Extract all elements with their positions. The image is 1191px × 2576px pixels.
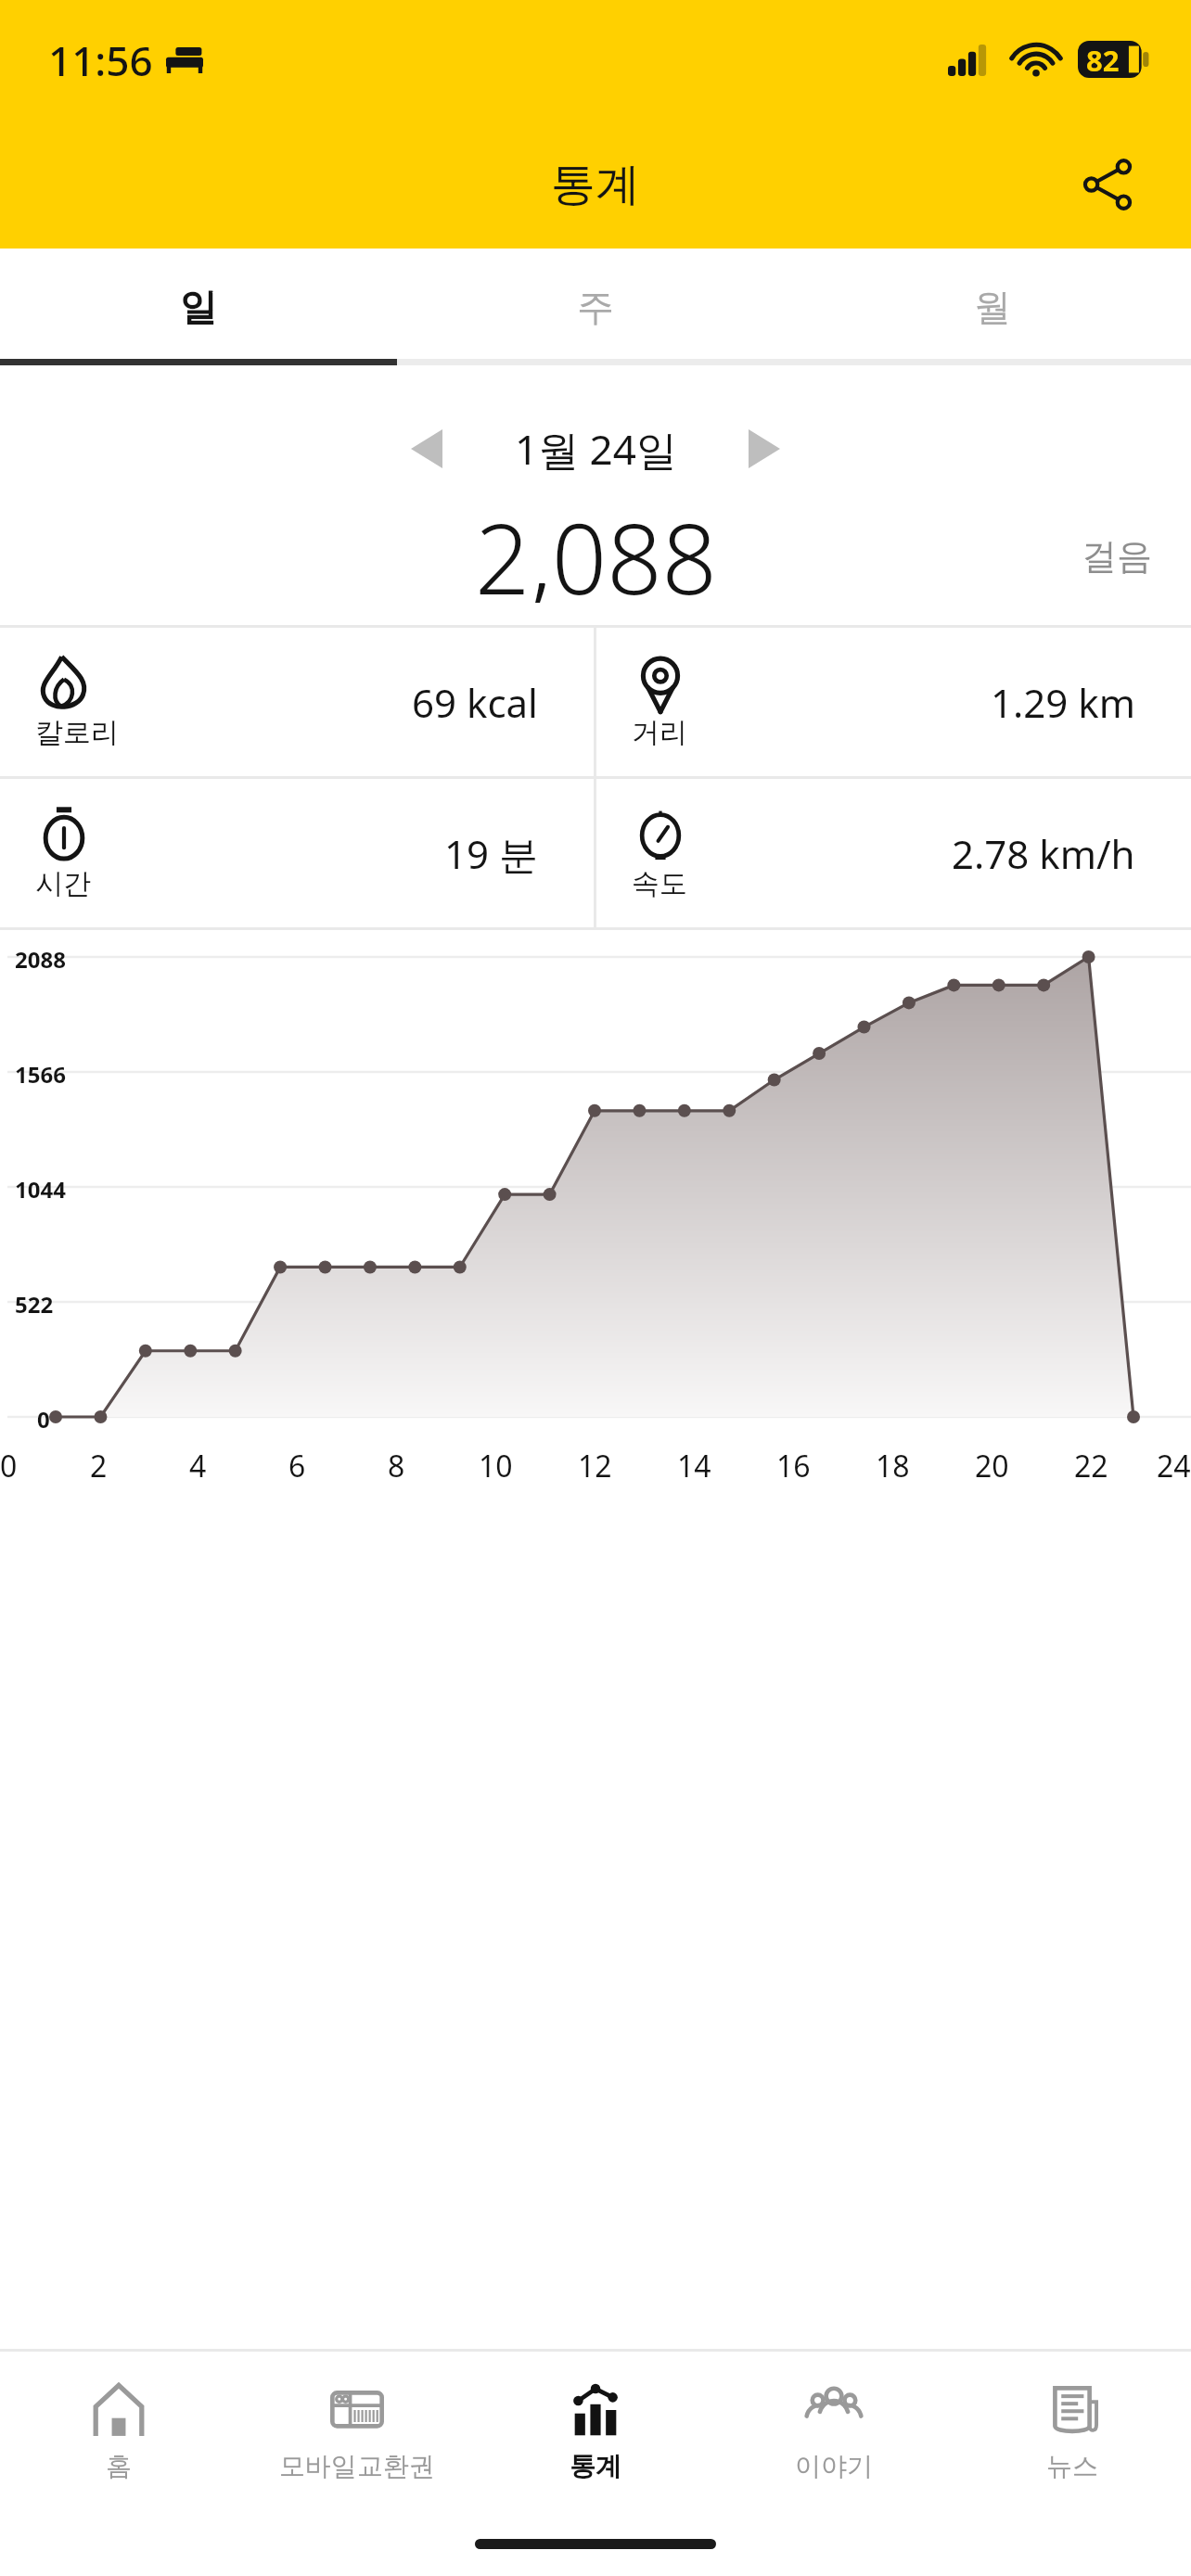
staticText: 24 xyxy=(1157,1446,1191,1486)
staticText: 1.29 km xyxy=(991,676,1135,729)
staticText: 통계 xyxy=(570,2450,621,2482)
button[interactable]: 속도 xyxy=(596,779,1191,927)
staticText: 18 xyxy=(876,1446,910,1486)
staticText: 522 xyxy=(15,1289,54,1320)
button[interactable]: 시간 xyxy=(0,779,594,927)
staticText: 69 kcal xyxy=(412,676,538,729)
button[interactable]: 주 xyxy=(397,249,794,365)
staticText: 16 xyxy=(776,1446,811,1486)
staticText: 속도 xyxy=(632,866,687,901)
staticText: 4 xyxy=(189,1446,207,1486)
button[interactable]: 다음 날짜 xyxy=(725,410,803,488)
button[interactable]: 통계 xyxy=(476,2352,714,2511)
button[interactable]: 월 xyxy=(794,249,1191,365)
button[interactable]: 홈 xyxy=(0,2352,237,2511)
button[interactable]: 공유 xyxy=(1063,140,1152,229)
staticText: 8 xyxy=(388,1446,405,1486)
staticText: 2.78 km/h xyxy=(952,827,1135,880)
button[interactable]: 칼로리 xyxy=(0,628,594,776)
button[interactable]: 일 xyxy=(0,249,397,365)
staticText: 뉴스 xyxy=(1046,2450,1098,2482)
staticText: 주 xyxy=(577,284,614,330)
button[interactable]: 이야기 xyxy=(714,2352,953,2511)
staticText: 22 xyxy=(1074,1446,1108,1486)
staticText: 거리 xyxy=(632,715,687,750)
staticText: 0 xyxy=(0,1446,18,1486)
staticText: 6 xyxy=(288,1446,306,1486)
staticText: 월 xyxy=(974,284,1011,330)
staticText: 2,088 xyxy=(475,491,717,603)
staticText: 12 xyxy=(578,1446,612,1486)
staticText: 2088 xyxy=(15,944,66,975)
staticText: 20 xyxy=(975,1446,1009,1486)
staticText: 11:56 xyxy=(48,32,153,88)
staticText: 19 분 xyxy=(444,827,538,880)
button[interactable]: 뉴스 xyxy=(953,2352,1191,2511)
staticText: 14 xyxy=(677,1446,711,1486)
staticText: 10 xyxy=(479,1446,513,1486)
staticText: 1566 xyxy=(15,1059,66,1090)
staticText: 시간 xyxy=(35,866,91,901)
staticText: 홈 xyxy=(106,2450,132,2482)
button[interactable]: 거리 xyxy=(596,628,1191,776)
staticText: 1월 24일 xyxy=(515,421,677,477)
staticText: 걸음 xyxy=(1082,534,1152,579)
staticText: 통계 xyxy=(551,157,640,212)
staticText: 칼로리 xyxy=(35,715,119,750)
staticText: 1044 xyxy=(15,1174,66,1205)
staticText: 모바일교환권 xyxy=(279,2450,435,2482)
staticText: 0 xyxy=(37,1404,50,1435)
staticText: 이야기 xyxy=(795,2450,873,2482)
button[interactable]: 모바일교환권 xyxy=(237,2352,476,2511)
button[interactable]: 이전 날짜 xyxy=(388,410,466,488)
staticText: 82 xyxy=(1086,41,1120,80)
staticText: 일 xyxy=(180,284,217,330)
staticText: 2 xyxy=(90,1446,108,1486)
